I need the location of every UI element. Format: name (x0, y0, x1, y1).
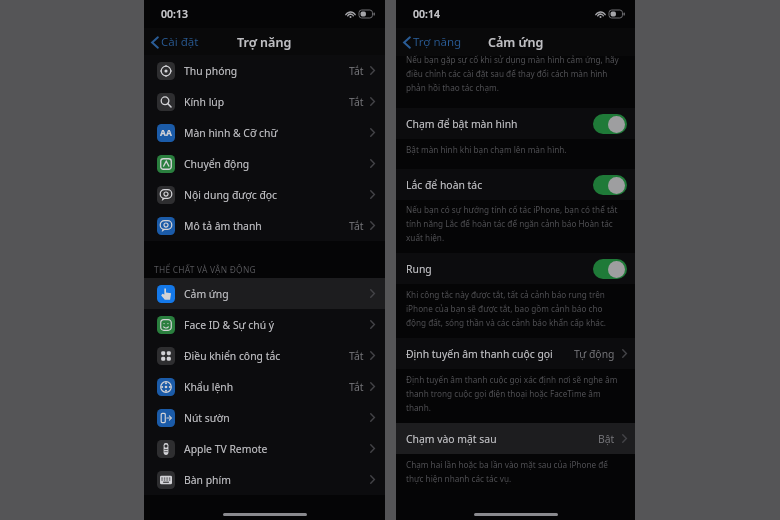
staticText: 00:14 (413, 7, 440, 21)
staticText: thực hiện nhanh các tác vụ. (406, 473, 512, 484)
staticText: Nếu bạn có sự hướng tính cố tác iPhone, … (406, 204, 618, 215)
staticText: Mô tả âm thanh (184, 219, 262, 233)
staticText: Tắt (349, 219, 364, 233)
button[interactable]: Chạm vào mặt sau (396, 423, 635, 454)
staticText: Tắt (349, 64, 364, 78)
staticText: Apple TV Remote (184, 442, 268, 456)
button[interactable]: Thu phóng (144, 55, 385, 86)
staticText: Tắt (349, 95, 364, 109)
staticText: Màn hình & Cỡ chữ (184, 126, 278, 140)
staticText: Trợ năng (237, 34, 292, 51)
staticText: Tự động (574, 347, 615, 361)
staticText: Kính lúp (184, 95, 225, 109)
button[interactable]: Rung (593, 259, 627, 279)
staticText: Điều khiển công tắc (184, 349, 281, 363)
staticText: Định tuyến âm thanh cuộc gọi (406, 347, 553, 361)
button[interactable]: Apple TV Remote (144, 433, 385, 464)
staticText: Chạm vào mặt sau (406, 432, 497, 446)
staticText: AA (160, 127, 172, 139)
button[interactable]: Khẩu lệnh (144, 371, 385, 402)
staticText: Trợ năng (413, 34, 462, 50)
button[interactable]: Kính lúp (144, 86, 385, 117)
button[interactable]: Điều khiển công tắc (144, 340, 385, 371)
staticText: iPhone của bạn sẽ được tắt, bao gồm cảnh… (406, 303, 603, 314)
staticText: Bật (598, 432, 615, 446)
staticText: Bật màn hình khi bạn chạm lên màn hình. (406, 144, 567, 155)
staticText: Cài đặt (161, 34, 199, 50)
staticText: Chuyển động (184, 157, 250, 171)
staticText: Định tuyến âm thanh cuộc gọi xác định nơ… (406, 374, 618, 385)
button[interactable]: Rung (396, 253, 635, 284)
staticText: Nút sườn (184, 411, 230, 425)
staticText: Thu phóng (184, 64, 238, 78)
staticText: Lắc để hoàn tác (406, 178, 483, 192)
staticText: Tắt (349, 380, 364, 394)
staticText: Khẩu lệnh (184, 380, 234, 394)
button[interactable]: Lắc để hoàn tác (396, 169, 635, 200)
button[interactable]: Nội dung được đọc (144, 179, 385, 210)
button[interactable]: Cài đặt (151, 34, 199, 50)
staticText: xuất hiện. (406, 232, 445, 243)
staticText: Rung (406, 262, 432, 276)
staticText: Tắt (349, 349, 364, 363)
staticText: Bàn phím (184, 473, 231, 487)
button[interactable]: Nút sườn (144, 402, 385, 433)
staticText: Nếu bạn gặp sự cố khi sử dụng màn hình c… (406, 54, 619, 65)
staticText: thanh trong cuộc gọi điện thoại hoặc Fac… (406, 388, 601, 399)
staticText: Chạm để bật màn hình (406, 117, 518, 131)
staticText: động đất, sóng thần và các cảnh báo khẩn… (406, 317, 607, 328)
staticText: Face ID & Sự chú ý (184, 318, 275, 332)
button[interactable]: AA (144, 117, 385, 148)
button[interactable]: Chuyển động (144, 148, 385, 179)
staticText: phản hồi thao tác chạm. (406, 82, 499, 93)
staticText: điều chỉnh các cài đặt sau để thay đổi c… (406, 68, 608, 79)
staticText: tính năng Lắc để hoàn tác để ngăn cảnh b… (406, 218, 613, 229)
button[interactable]: Trợ năng (403, 34, 462, 50)
button[interactable]: Cảm ứng (144, 278, 385, 309)
staticText: Chạm hai lần hoặc ba lần vào mặt sau của… (406, 459, 608, 470)
staticText: Nội dung được đọc (184, 188, 278, 202)
button[interactable]: Chạm để bật màn hình (396, 108, 635, 139)
button[interactable]: Face ID & Sự chú ý (144, 309, 385, 340)
staticText: Khi công tắc này được tắt, tất cả cảnh b… (406, 289, 605, 300)
button[interactable]: Bàn phím (144, 464, 385, 495)
button[interactable]: Chạm để bật màn hình (593, 114, 627, 134)
button[interactable]: Mô tả âm thanh (144, 210, 385, 241)
staticText: THỂ CHẤT VÀ VẬN ĐỘNG (154, 264, 256, 275)
staticText: Cảm ứng (184, 287, 229, 301)
staticText: Cảm ứng (488, 34, 544, 51)
staticText: thanh. (406, 402, 431, 413)
button[interactable]: Lắc để hoàn tác (593, 175, 627, 195)
staticText: 00:13 (161, 7, 188, 21)
button[interactable]: Định tuyến âm thanh cuộc gọi (396, 338, 635, 369)
